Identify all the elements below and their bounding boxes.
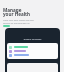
button[interactable] — [9, 49, 56, 53]
staticText: Today's summary — [7, 38, 58, 41]
staticText: Manage your Health — [3, 7, 31, 18]
staticText: Track your daily habits and stay healthy… — [3, 19, 34, 24]
button[interactable]: Get started — [3, 25, 10, 27]
button[interactable] — [9, 45, 56, 49]
button[interactable] — [9, 53, 56, 57]
